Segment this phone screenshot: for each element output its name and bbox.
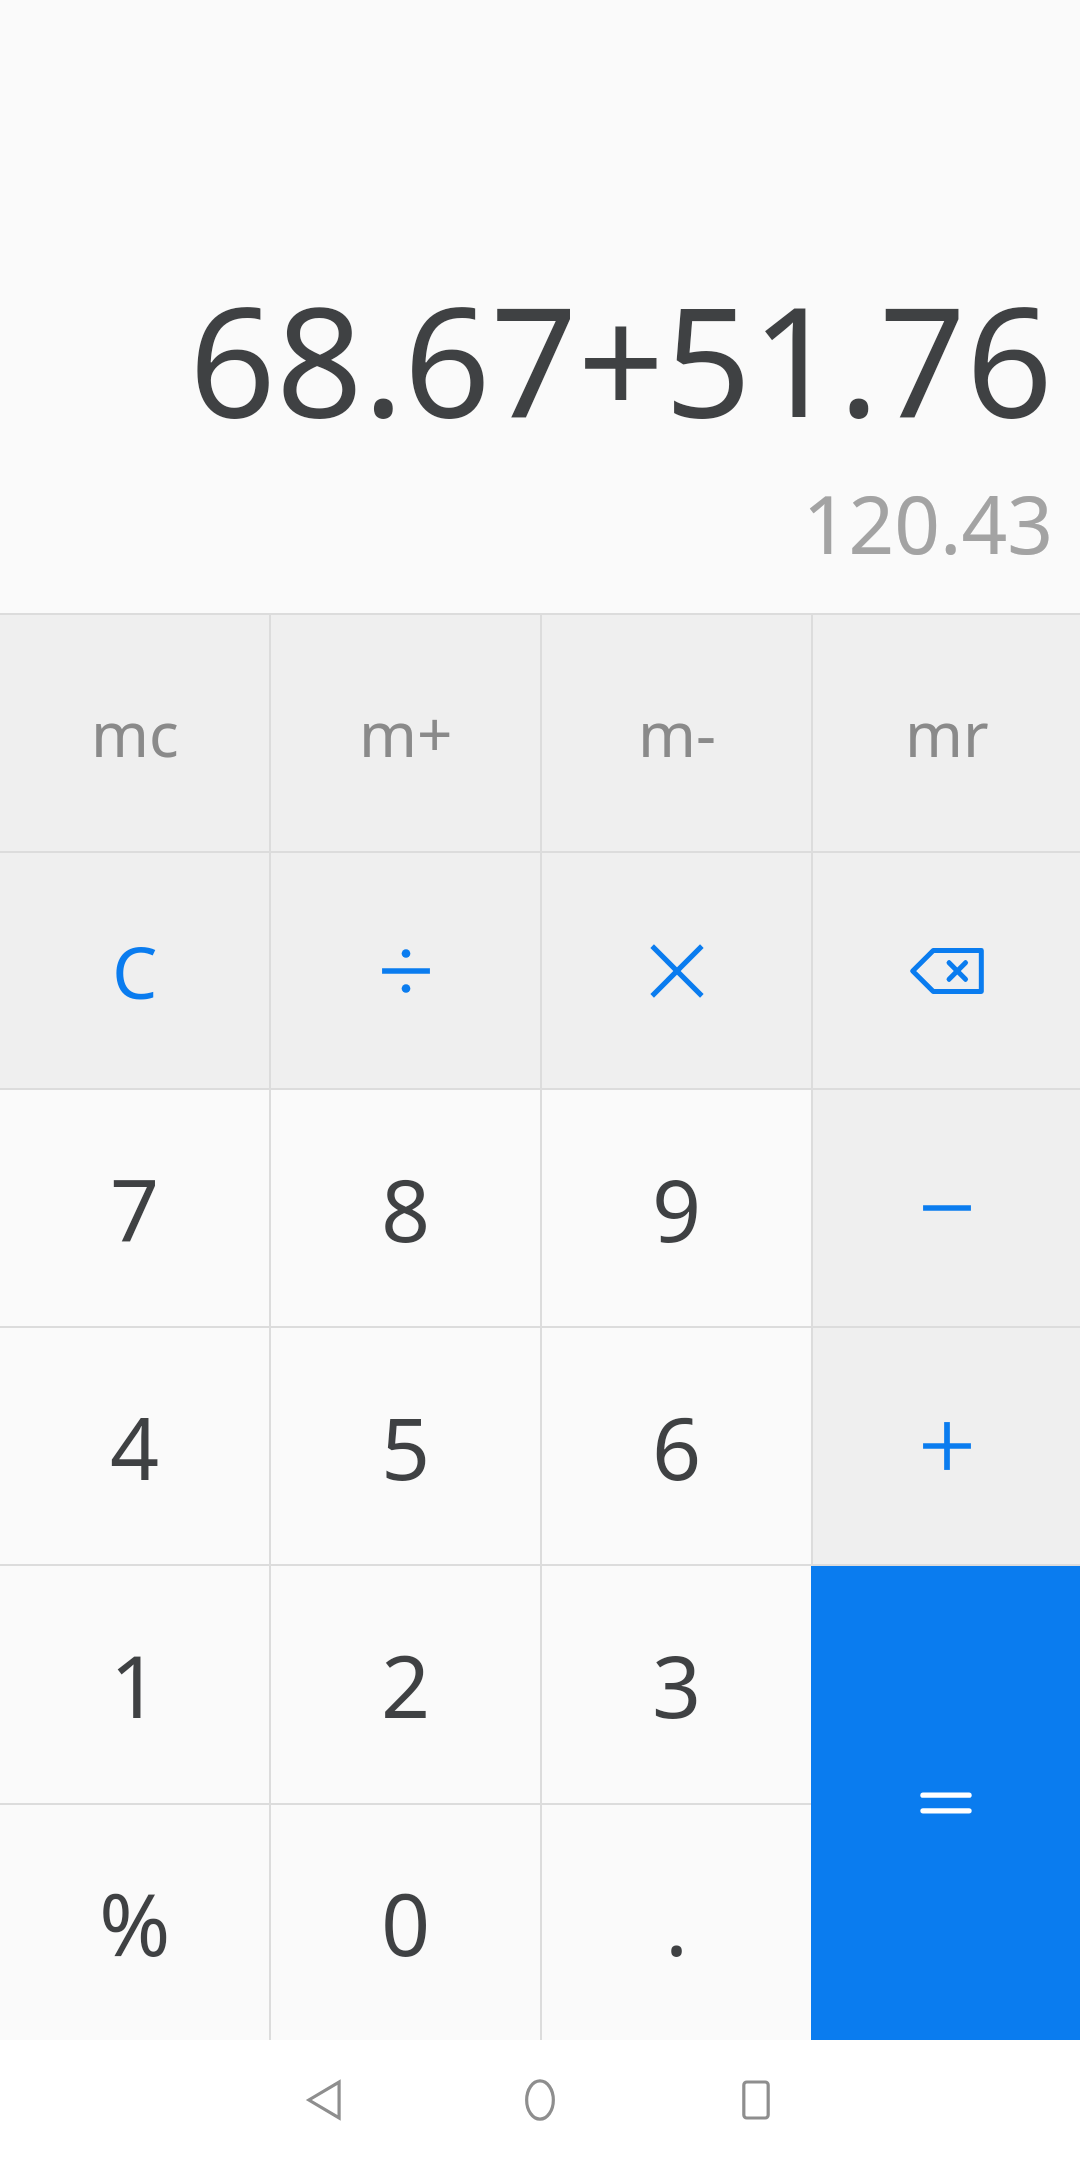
staticText: 5 <box>381 1388 431 1505</box>
button[interactable]: 5 <box>271 1328 540 1564</box>
staticText: C <box>112 922 158 1020</box>
button[interactable]: 8 <box>271 1090 540 1326</box>
button[interactable]: m- <box>542 615 811 851</box>
button[interactable]: Back <box>216 2040 432 2160</box>
button[interactable]: 9 <box>542 1090 811 1326</box>
button[interactable]: Minus <box>813 1090 1080 1326</box>
button[interactable]: mc <box>0 615 269 851</box>
staticText: 0 <box>381 1864 431 1981</box>
button[interactable]: Divide <box>271 853 540 1088</box>
button[interactable]: 6 <box>542 1328 811 1564</box>
staticText: 2 <box>381 1626 431 1743</box>
staticText: 3 <box>652 1626 702 1743</box>
staticText: 8 <box>381 1150 431 1267</box>
staticText: 4 <box>110 1388 160 1505</box>
button[interactable]: m+ <box>271 615 540 851</box>
button[interactable]: Plus <box>813 1328 1080 1564</box>
staticText: 1 <box>110 1626 160 1743</box>
button[interactable]: Multiply <box>542 853 811 1088</box>
button[interactable]: 0 <box>271 1805 540 2040</box>
button[interactable]: . <box>542 1805 811 2040</box>
button[interactable]: mr <box>813 615 1080 851</box>
staticText: mc <box>91 691 179 775</box>
staticText: 68.67+51.76 <box>189 255 1053 462</box>
staticText: 9 <box>652 1150 702 1267</box>
staticText: 120.43 <box>802 468 1053 577</box>
staticText: % <box>99 1864 171 1981</box>
button[interactable]: Home <box>432 2040 648 2160</box>
button[interactable]: C <box>0 853 269 1088</box>
button[interactable]: Equals <box>811 1566 1080 2040</box>
staticText: m+ <box>359 691 453 775</box>
staticText: . <box>665 1864 689 1981</box>
staticText: m- <box>638 691 716 775</box>
button[interactable]: 1 <box>0 1566 269 1803</box>
staticText: 6 <box>652 1388 702 1505</box>
button[interactable]: 4 <box>0 1328 269 1564</box>
staticText: 7 <box>110 1150 160 1267</box>
button[interactable]: 2 <box>271 1566 540 1803</box>
staticText: mr <box>905 691 989 775</box>
button[interactable]: Backspace <box>813 853 1080 1088</box>
button[interactable]: 7 <box>0 1090 269 1326</box>
button[interactable]: Recent apps <box>648 2040 864 2160</box>
button[interactable]: 3 <box>542 1566 811 1803</box>
button[interactable]: % <box>0 1805 269 2040</box>
